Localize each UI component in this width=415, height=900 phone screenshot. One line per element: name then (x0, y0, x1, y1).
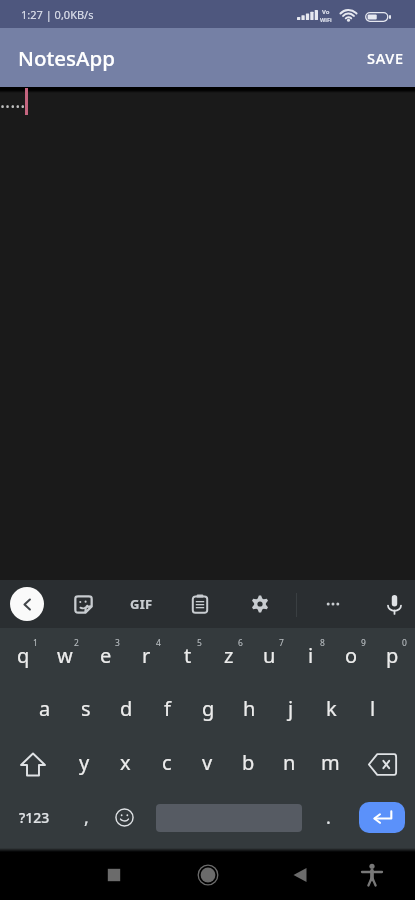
button[interactable]: ..... (0, 87, 415, 580)
button[interactable]: v (187, 738, 228, 791)
button[interactable]: Enter (359, 802, 405, 833)
button[interactable]: m (310, 738, 351, 791)
button[interactable]: z (208, 631, 249, 684)
button[interactable]: a (24, 684, 65, 737)
staticText: e (100, 642, 112, 669)
staticText: 9 (361, 637, 366, 649)
staticText: i (308, 642, 314, 669)
staticText: q (17, 642, 30, 669)
button[interactable]: n (269, 738, 310, 791)
button[interactable]: Backspace (357, 738, 407, 791)
staticText: SAVE (367, 48, 404, 68)
staticText: ?123 (19, 808, 50, 827)
button[interactable]: u (249, 631, 290, 684)
button[interactable]: ?123 (10, 791, 58, 844)
staticText: 7 (279, 637, 284, 649)
button[interactable]: w (44, 631, 85, 684)
staticText: . (326, 805, 331, 830)
button[interactable]: o (331, 631, 372, 684)
staticText: l (370, 695, 376, 722)
button[interactable]: k (311, 684, 352, 737)
staticText: f (164, 695, 171, 722)
staticText: GIF (130, 595, 153, 613)
button[interactable]: Settings (243, 587, 277, 621)
staticText: w (57, 642, 73, 669)
button[interactable]: GIF (124, 587, 158, 621)
staticText: n (283, 749, 296, 776)
staticText: 0 (402, 637, 407, 649)
button[interactable]: Clipboard (183, 587, 217, 621)
button[interactable]: i (290, 631, 331, 684)
button[interactable]: Accessibility (350, 851, 394, 899)
staticText: 2 (74, 637, 79, 649)
button[interactable]: d (106, 684, 147, 737)
staticText: 1 (33, 637, 38, 649)
staticText: h (243, 695, 256, 722)
button[interactable]: Recents (92, 851, 136, 899)
button[interactable]: l (352, 684, 393, 737)
staticText: b (242, 749, 255, 776)
staticText: j (288, 695, 294, 722)
staticText: 4 (156, 637, 161, 649)
button[interactable]: SAVE (355, 28, 415, 87)
staticText: 3 (115, 637, 120, 649)
staticText: r (142, 642, 151, 669)
button[interactable]: Close keyboard toolbar (10, 587, 44, 621)
button[interactable]: t (167, 631, 208, 684)
staticText: a (39, 695, 51, 722)
staticText: z (224, 642, 234, 669)
button[interactable]: r (126, 631, 167, 684)
staticText: 5 (197, 637, 202, 649)
staticText: 1:27 | 0,0KB/s (21, 7, 94, 22)
button[interactable]: p (372, 631, 413, 684)
button[interactable]: g (188, 684, 229, 737)
staticText: x (120, 749, 131, 776)
staticText: s (81, 695, 91, 722)
staticText: t (184, 642, 192, 669)
button[interactable]: q (3, 631, 44, 684)
button[interactable]: , (66, 791, 106, 844)
button[interactable]: y (64, 738, 105, 791)
button[interactable]: Shift (8, 738, 58, 791)
button[interactable]: Voice input (377, 587, 411, 621)
staticText: m (321, 749, 340, 776)
staticText: 6 (238, 637, 243, 649)
staticText: ..... (0, 88, 26, 114)
button[interactable]: h (229, 684, 270, 737)
button[interactable]: Emoji (104, 791, 144, 844)
staticText: o (345, 642, 358, 669)
button[interactable]: f (147, 684, 188, 737)
staticText: u (263, 642, 276, 669)
staticText: v (202, 749, 213, 776)
staticText: Vo (322, 8, 330, 16)
button[interactable]: j (270, 684, 311, 737)
staticText: y (79, 749, 90, 776)
button[interactable]: Home (186, 851, 230, 899)
staticText: NotesApp (18, 44, 115, 72)
button[interactable]: s (65, 684, 106, 737)
staticText: p (386, 642, 399, 669)
staticText: 8 (320, 637, 325, 649)
button[interactable]: . (308, 791, 348, 844)
button[interactable]: Back (278, 851, 322, 899)
staticText: g (202, 695, 215, 722)
staticText: d (120, 695, 133, 722)
button[interactable]: b (228, 738, 269, 791)
button[interactable]: More options (316, 587, 350, 621)
button[interactable]: e (85, 631, 126, 684)
button[interactable]: Stickers (66, 587, 100, 621)
staticText: WiFi (320, 16, 332, 23)
staticText: k (326, 695, 337, 722)
button[interactable]: x (105, 738, 146, 791)
staticText: c (162, 749, 172, 776)
button[interactable]: c (146, 738, 187, 791)
staticText: , (84, 805, 89, 830)
